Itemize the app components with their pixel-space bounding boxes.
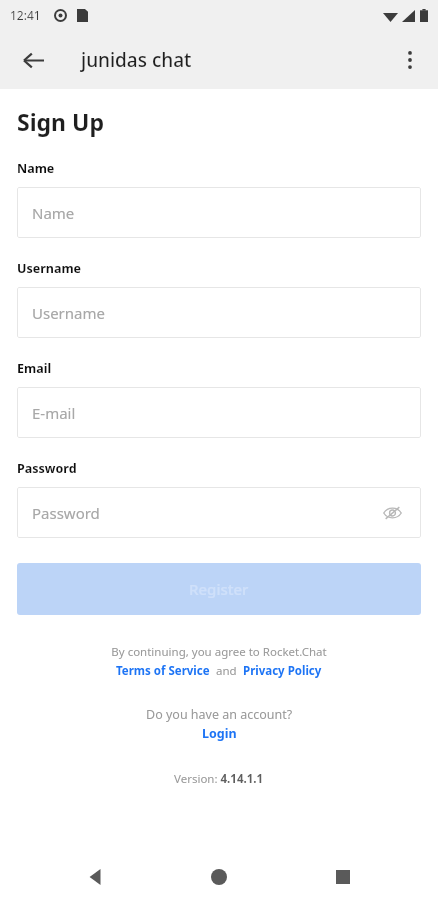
staticText: Password [32, 503, 100, 523]
staticText: and [210, 663, 243, 679]
button[interactable]: More options [390, 40, 430, 80]
staticText: Username [32, 303, 105, 323]
button[interactable]: Terms of Service [116, 663, 210, 679]
button[interactable]: Show password [378, 499, 406, 527]
button[interactable]: E-mail [17, 387, 421, 438]
button[interactable]: Back [68, 854, 124, 900]
staticText: junidas chat [81, 47, 192, 73]
staticText: Name [32, 203, 75, 223]
button[interactable]: Privacy Policy [243, 663, 322, 679]
staticText: Version: 4.14.1.1 [174, 771, 264, 787]
staticText: Login [202, 725, 237, 742]
staticText: Register [189, 579, 249, 599]
button[interactable]: Login [202, 725, 237, 742]
button[interactable]: Recent apps [315, 854, 371, 900]
staticText: Terms of Service [116, 663, 210, 679]
button[interactable]: Back [14, 41, 52, 79]
staticText: 12:41 [10, 7, 41, 23]
staticText: Sign Up [17, 106, 104, 137]
staticText: Password [17, 460, 77, 477]
staticText: Email [17, 360, 52, 377]
button[interactable]: Password [17, 487, 421, 538]
staticText: Privacy Policy [243, 663, 322, 679]
staticText: By continuing, you agree to Rocket.Chat [111, 644, 327, 660]
button[interactable]: Name [17, 187, 421, 238]
button[interactable]: Home [191, 854, 247, 900]
button[interactable]: Username [17, 287, 421, 338]
staticText: Do you have an account? [146, 706, 293, 723]
staticText: E-mail [32, 403, 76, 423]
staticText: Username [17, 260, 82, 277]
staticText: Name [17, 160, 55, 177]
